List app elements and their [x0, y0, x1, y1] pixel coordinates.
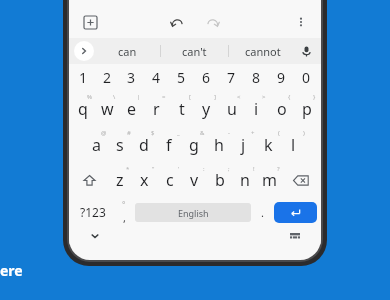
staticText: $: [151, 129, 155, 137]
button[interactable]: g: [181, 127, 206, 163]
staticText: #: [127, 129, 131, 137]
button[interactable]: 4: [144, 64, 169, 91]
button[interactable]: i: [244, 91, 269, 127]
button[interactable]: More options: [289, 10, 313, 34]
button[interactable]: p: [294, 91, 319, 127]
button[interactable]: k: [256, 127, 281, 163]
staticText: 9: [277, 68, 286, 87]
staticText: @: [101, 129, 107, 137]
button[interactable]: 1: [71, 64, 95, 91]
staticText: can't: [182, 44, 207, 59]
staticText: }: [313, 93, 316, 101]
button[interactable]: 6: [194, 64, 219, 91]
staticText: l: [291, 134, 296, 156]
staticText: g: [189, 134, 199, 156]
button[interactable]: 7: [219, 64, 244, 91]
button[interactable]: e: [119, 91, 144, 127]
button[interactable]: °: [112, 197, 135, 227]
button[interactable]: s: [108, 127, 132, 163]
staticText: j: [241, 134, 246, 156]
button[interactable]: Undo: [164, 9, 190, 35]
button[interactable]: Redo: [200, 9, 226, 35]
button[interactable]: m: [257, 163, 282, 197]
staticText: 1: [79, 68, 88, 87]
staticText: English: [178, 207, 209, 219]
staticText: ): [303, 129, 305, 137]
button[interactable]: Expand suggestions: [74, 41, 94, 61]
button[interactable]: a: [84, 127, 108, 163]
button[interactable]: r: [144, 91, 169, 127]
staticText: >: [262, 93, 266, 101]
staticText: u: [227, 98, 237, 120]
staticText: t: [179, 98, 185, 120]
button[interactable]: English: [135, 203, 251, 222]
staticText: ,: [123, 210, 126, 225]
staticText: ]: [214, 93, 216, 101]
staticText: o: [277, 98, 287, 120]
staticText: &: [200, 129, 205, 137]
staticText: {: [288, 93, 291, 101]
button[interactable]: 5: [169, 64, 194, 91]
staticText: 8: [252, 68, 261, 87]
staticText: |: [137, 93, 141, 101]
button[interactable]: Voice input: [296, 41, 316, 61]
staticText: v: [190, 169, 199, 191]
staticText: q: [78, 98, 88, 120]
button[interactable]: y: [194, 91, 219, 127]
button[interactable]: 0: [294, 64, 319, 91]
button[interactable]: q: [71, 91, 95, 127]
staticText: =: [162, 93, 166, 101]
button[interactable]: Add: [77, 9, 103, 35]
staticText: ?123: [80, 204, 106, 220]
staticText: 6: [202, 68, 211, 87]
staticText: 4: [152, 68, 161, 87]
button[interactable]: b: [207, 163, 232, 197]
staticText: ": [152, 165, 155, 173]
button[interactable]: u: [219, 91, 244, 127]
button[interactable]: j: [231, 127, 256, 163]
button[interactable]: o: [269, 91, 294, 127]
staticText: ere: [0, 261, 23, 280]
staticText: p: [302, 98, 312, 120]
staticText: e: [127, 98, 137, 120]
button[interactable]: can't: [161, 38, 228, 64]
staticText: \: [113, 93, 116, 101]
staticText: 3: [127, 68, 136, 87]
staticText: n: [240, 169, 250, 191]
button[interactable]: f: [156, 127, 181, 163]
staticText: .: [261, 205, 264, 220]
staticText: y: [202, 98, 211, 120]
button[interactable]: .: [251, 197, 274, 227]
staticText: d: [139, 134, 149, 156]
staticText: a: [92, 134, 101, 156]
button[interactable]: n: [232, 163, 257, 197]
button[interactable]: d: [132, 127, 156, 163]
staticText: cannot: [245, 44, 281, 59]
button[interactable]: Backspace: [282, 163, 319, 197]
button[interactable]: Shift: [71, 163, 107, 197]
button[interactable]: cannot: [229, 38, 296, 64]
staticText: [: [189, 93, 191, 101]
staticText: can: [118, 44, 137, 59]
staticText: ;: [228, 165, 230, 173]
button[interactable]: 9: [269, 64, 294, 91]
button[interactable]: 2: [95, 64, 119, 91]
button[interactable]: w: [95, 91, 119, 127]
button[interactable]: Keyboard settings: [285, 227, 305, 245]
button[interactable]: l: [281, 127, 306, 163]
button[interactable]: 3: [119, 64, 144, 91]
button[interactable]: Hide keyboard: [85, 227, 105, 245]
button[interactable]: 8: [244, 64, 269, 91]
button[interactable]: ?123: [73, 197, 112, 227]
button[interactable]: z: [107, 163, 132, 197]
staticText: z: [116, 169, 124, 191]
button[interactable]: v: [182, 163, 207, 197]
button[interactable]: t: [169, 91, 194, 127]
staticText: 7: [227, 68, 236, 87]
button[interactable]: h: [206, 127, 231, 163]
button[interactable]: Enter: [274, 202, 317, 223]
button[interactable]: can: [94, 38, 160, 64]
button[interactable]: c: [157, 163, 182, 197]
staticText: 5: [177, 68, 186, 87]
button[interactable]: x: [132, 163, 157, 197]
